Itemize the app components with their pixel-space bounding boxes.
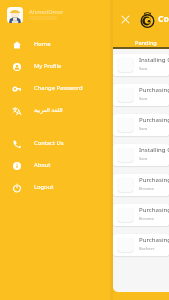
staticText: Change Password — [34, 84, 83, 92]
button[interactable]: Installing Ceramic — [113, 54, 169, 76]
button[interactable]: Pending — [122, 38, 169, 47]
staticText: Breama — [139, 186, 154, 191]
staticText: Sara — [139, 156, 148, 161]
button[interactable]: Installing Ceramic — [113, 144, 169, 166]
button[interactable]: Purchasing Paint — [113, 234, 169, 256]
button[interactable]: Purchasing Paint — [113, 174, 169, 196]
staticText: My Profile — [34, 62, 62, 70]
staticText: Breama — [139, 216, 154, 221]
button[interactable]: About — [0, 154, 113, 176]
button[interactable]: Contact Us — [0, 132, 113, 154]
button[interactable]: Close navigation drawer — [118, 12, 132, 26]
button[interactable]: Purchasing Paint — [113, 114, 169, 136]
staticText: Home — [34, 40, 51, 48]
button[interactable]: Purchasing Paint — [113, 84, 169, 106]
staticText: Contact Us — [34, 139, 64, 147]
staticText: Purchasing Paint — [139, 85, 169, 93]
staticText: Sara — [139, 126, 148, 131]
staticText: اللغة العربية — [34, 106, 63, 114]
staticText: AhmedOmer — [29, 8, 64, 16]
staticText: Installing Ceramic — [139, 145, 169, 153]
staticText: Purchasing Paint — [139, 235, 169, 243]
staticText: 01234567890 — [29, 15, 57, 21]
button[interactable]: AhmedOmer — [7, 7, 113, 23]
staticText: Installing Ceramic — [139, 55, 169, 63]
button[interactable]: Purchasing Paint — [113, 204, 169, 226]
staticText: Sara — [139, 66, 148, 71]
staticText: Purchasing Paint — [139, 205, 169, 213]
staticText: About — [34, 161, 51, 169]
staticText: Purchasing Paint — [139, 115, 169, 123]
button[interactable]: Home — [0, 33, 113, 55]
staticText: Logout — [34, 183, 54, 191]
button[interactable]: Logout — [0, 176, 113, 198]
staticText: Basheer — [139, 246, 155, 251]
button[interactable]: اللغة العربية — [0, 99, 113, 121]
button[interactable]: My Profile — [0, 55, 113, 77]
button[interactable]: Change Password — [0, 77, 113, 99]
staticText: Purchasing Paint — [139, 175, 169, 183]
staticText: Pending — [135, 39, 157, 47]
staticText: Sara — [139, 96, 148, 101]
staticText: Co — [158, 13, 169, 25]
